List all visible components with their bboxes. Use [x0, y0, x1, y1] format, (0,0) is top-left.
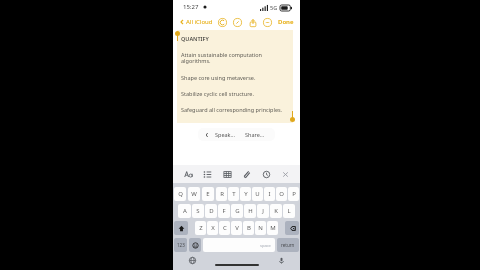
staticText: W [191, 190, 197, 198]
staticText: F [222, 207, 226, 215]
button[interactable]: B [243, 221, 254, 235]
button[interactable]: Shift [174, 221, 188, 235]
staticText: Shape core using metaverse. [181, 74, 256, 81]
button[interactable]: I [264, 187, 275, 201]
staticText: Stabilize cyclic cell structure. [181, 90, 254, 97]
staticText: N [258, 224, 263, 232]
staticText: J [262, 207, 264, 215]
button[interactable]: All iCloud [178, 18, 214, 26]
staticText: K [274, 207, 278, 215]
button[interactable]: X [207, 221, 218, 235]
button[interactable]: More [262, 17, 273, 28]
button[interactable]: F [218, 204, 230, 218]
button[interactable]: Dictate [276, 255, 286, 265]
staticText: 15:27 [183, 3, 199, 11]
button[interactable]: H [244, 204, 256, 218]
button[interactable]: T [228, 187, 239, 201]
staticText: P [292, 190, 296, 198]
staticText: C [223, 224, 227, 232]
button[interactable]: Speak... [210, 131, 240, 138]
button[interactable]: L [283, 204, 295, 218]
staticText: E [206, 190, 210, 198]
button[interactable]: S [192, 204, 204, 218]
button[interactable]: W [188, 187, 200, 201]
staticText: U [255, 190, 260, 198]
button[interactable]: space [203, 238, 275, 252]
button[interactable]: 123 [174, 238, 187, 252]
button[interactable]: Backspace [285, 221, 299, 235]
button[interactable]: G [231, 204, 243, 218]
staticText: QUANTIFY [181, 35, 209, 42]
button[interactable]: V [231, 221, 242, 235]
staticText: Attain sustainable computation algorithm… [181, 51, 292, 65]
button[interactable]: U [252, 187, 263, 201]
button[interactable]: Change keyboard [187, 255, 197, 265]
button[interactable]: O [276, 187, 287, 201]
button[interactable]: Attach [239, 167, 253, 181]
button[interactable]: Done [277, 18, 295, 26]
staticText: Y [244, 190, 248, 198]
staticText: Z [199, 224, 203, 232]
staticText: S [196, 207, 200, 215]
button[interactable]: A [178, 204, 191, 218]
staticText: 5G [270, 4, 278, 11]
button[interactable]: return [277, 238, 299, 252]
staticText: Speak... [215, 131, 235, 138]
button[interactable]: Emoji [189, 238, 201, 252]
button[interactable]: Text format [181, 167, 195, 181]
button[interactable]: Table [220, 167, 234, 181]
staticText: V [235, 224, 239, 232]
staticText: Q [178, 190, 183, 198]
button[interactable]: Share [247, 17, 258, 28]
staticText: 123 [177, 242, 185, 248]
button[interactable]: N [255, 221, 266, 235]
button[interactable]: E [202, 187, 214, 201]
staticText: M [270, 224, 276, 232]
staticText: G [235, 207, 240, 215]
staticText: B [247, 224, 251, 232]
button[interactable]: Y [240, 187, 251, 201]
button[interactable]: J [257, 204, 269, 218]
button[interactable]: Z [195, 221, 206, 235]
staticText: O [279, 190, 284, 198]
button[interactable]: Previous [203, 131, 210, 138]
button[interactable]: P [288, 187, 299, 201]
button[interactable]: Share... [240, 131, 270, 138]
staticText: Done [278, 18, 294, 26]
staticText: T [232, 190, 236, 198]
staticText: space [260, 243, 271, 248]
button[interactable]: Compose [232, 17, 243, 28]
staticText: H [248, 207, 253, 215]
button[interactable]: K [270, 204, 282, 218]
staticText: R [220, 190, 224, 198]
staticText: X [211, 224, 215, 232]
staticText: return [281, 242, 295, 248]
button[interactable]: Q [174, 187, 186, 201]
staticText: Share... [245, 131, 265, 138]
button[interactable]: Close [278, 167, 292, 181]
button[interactable]: Checklist [200, 167, 214, 181]
staticText: Safeguard all corresponding principles. [181, 106, 283, 113]
button[interactable]: C [219, 221, 230, 235]
button[interactable]: Camera [259, 167, 273, 181]
staticText: D [209, 207, 214, 215]
button[interactable]: Undo [217, 17, 228, 28]
button[interactable]: D [205, 204, 217, 218]
button[interactable]: M [267, 221, 278, 235]
staticText: All iCloud [186, 18, 213, 26]
button[interactable]: R [216, 187, 227, 201]
staticText: L [287, 207, 291, 215]
staticText: I [268, 190, 271, 198]
staticText: A [183, 207, 187, 215]
